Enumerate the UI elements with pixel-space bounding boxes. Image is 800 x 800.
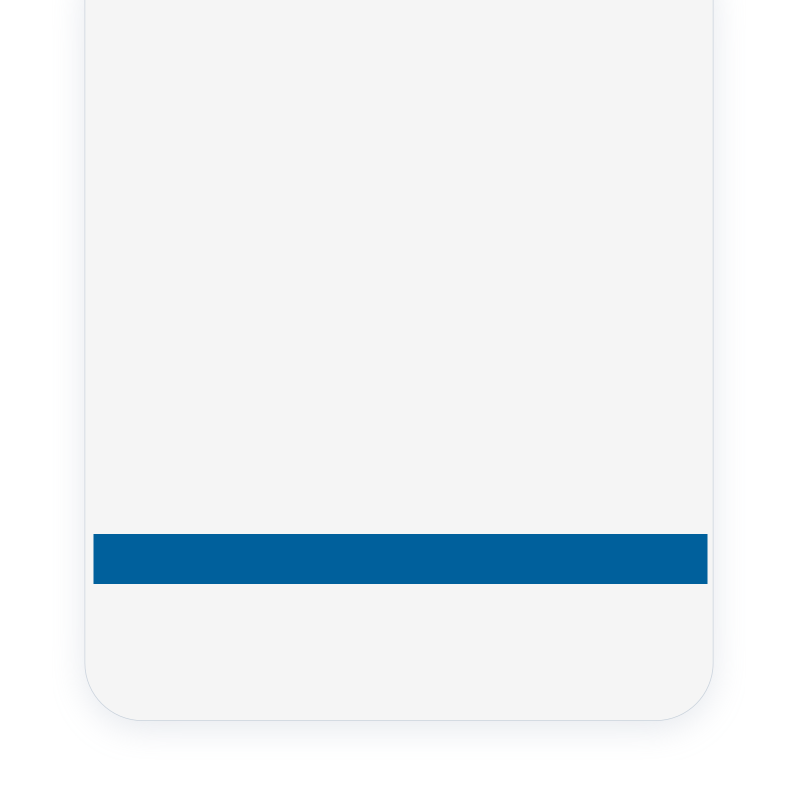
button[interactable]: Continue [93,534,707,584]
